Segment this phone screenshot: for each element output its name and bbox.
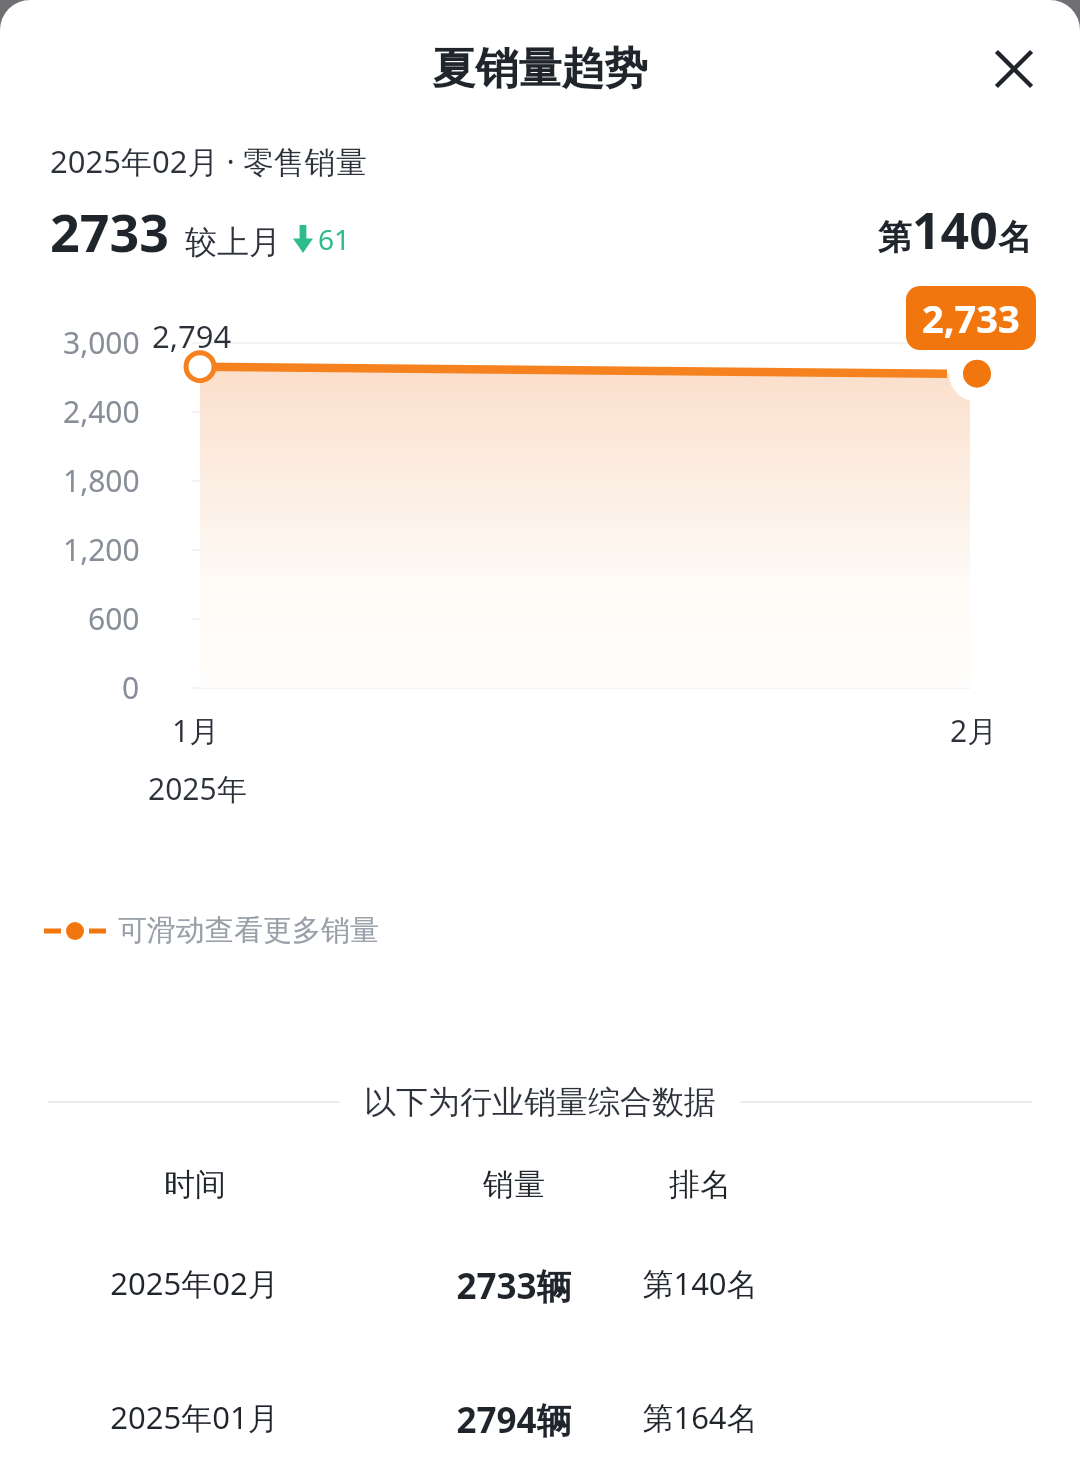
staticText: 2,794	[152, 315, 232, 357]
staticText: 夏销量趋势	[0, 42, 1080, 96]
staticText: 140	[912, 196, 998, 264]
staticText: 600	[88, 598, 140, 639]
staticText: 排名	[669, 1165, 731, 1204]
staticText: 3,000	[63, 322, 140, 363]
staticText: 1,200	[63, 529, 140, 570]
staticText: 2025年02月	[110, 1262, 279, 1304]
staticText: 2025年	[148, 768, 247, 809]
staticText: 2733辆	[456, 1262, 572, 1310]
button[interactable]: Close	[982, 37, 1046, 101]
staticText: 以下为行业销量综合数据	[364, 1082, 716, 1122]
staticText: 第164名	[642, 1396, 758, 1438]
button[interactable]: 2025年02月	[0, 1262, 1080, 1310]
staticText: 2月	[950, 710, 998, 751]
staticText: 1月	[172, 710, 220, 751]
button[interactable]: 可滑动查看更多销量	[44, 912, 379, 949]
staticText: 销量	[483, 1165, 545, 1204]
staticText: 2,400	[63, 391, 140, 432]
staticText: 0	[122, 667, 140, 708]
staticText: 2733	[50, 196, 169, 267]
staticText: 2,733	[922, 292, 1020, 344]
staticText: 2794辆	[456, 1396, 572, 1444]
staticText: 较上月	[185, 222, 281, 262]
staticText: 61	[318, 220, 351, 258]
staticText: 1,800	[63, 460, 140, 501]
staticText: 时间	[164, 1165, 226, 1204]
staticText: 2025年01月	[110, 1396, 279, 1438]
button[interactable]: 时间	[0, 1165, 1080, 1204]
staticText: 可滑动查看更多销量	[118, 912, 379, 949]
staticText: 第140名	[642, 1262, 758, 1304]
button[interactable]: 2,733	[906, 286, 1036, 350]
staticText: 名	[998, 216, 1032, 259]
staticText: 2025年02月 · 零售销量	[50, 140, 367, 182]
button[interactable]: 2025年01月	[0, 1396, 1080, 1444]
staticText: 第	[878, 216, 912, 259]
